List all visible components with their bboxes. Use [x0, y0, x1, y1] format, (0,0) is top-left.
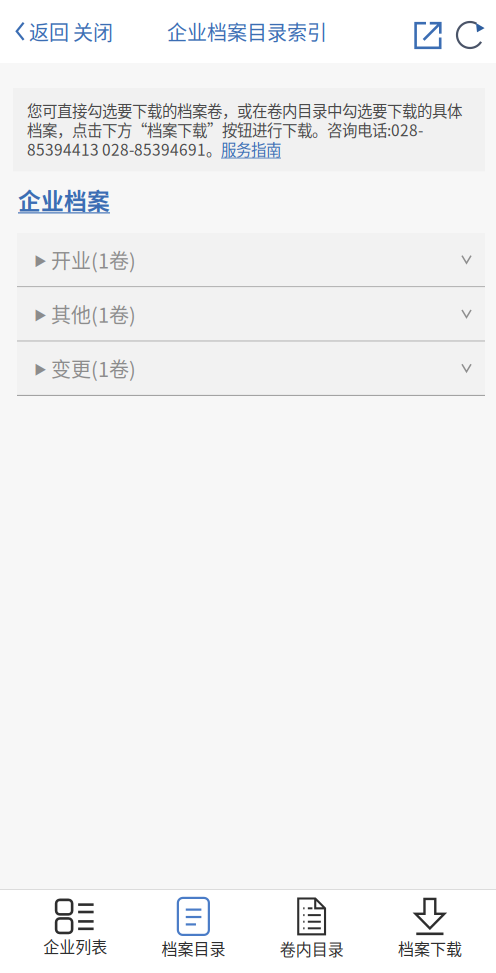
staticText: 档案下载	[398, 936, 462, 960]
button[interactable]: ▶	[17, 233, 485, 287]
staticText: 服务指南	[221, 138, 281, 160]
button[interactable]: Refresh	[442, 7, 496, 55]
staticText: 85394413 028-85394691。	[27, 138, 221, 160]
staticText: ▶	[34, 305, 47, 323]
button[interactable]: Open in browser	[404, 7, 442, 55]
button[interactable]: 档案目录	[134, 890, 252, 973]
button[interactable]: 卷内目录	[252, 890, 371, 973]
button[interactable]: 服务指南	[221, 138, 281, 160]
staticText: ▶	[34, 250, 47, 269]
button[interactable]: 返回 关闭	[0, 5, 123, 58]
staticText: 您可直接勾选要下载的档案卷，或在卷内目录中勾选要下载的具体	[27, 99, 462, 121]
button[interactable]: 企业列表	[16, 892, 134, 971]
button[interactable]: ▶	[17, 342, 485, 396]
staticText: 档案目录	[161, 936, 225, 960]
staticText: ▶	[34, 359, 47, 377]
staticText: 开业(1卷)	[47, 245, 136, 274]
button[interactable]: 企业档案	[0, 171, 110, 233]
staticText: 变更(1卷)	[47, 354, 136, 383]
button[interactable]: 档案下载	[371, 890, 489, 973]
staticText: 企业列表	[43, 934, 107, 958]
staticText: 返回 关闭	[29, 17, 113, 46]
staticText: 档案，点击下方“档案下载”按钮进行下载。咨询电话:028-	[27, 118, 423, 141]
staticText: 企业档案目录索引	[167, 17, 327, 46]
staticText: 企业档案	[18, 183, 110, 216]
staticText: 其他(1卷)	[47, 299, 136, 328]
staticText: 卷内目录	[280, 937, 344, 960]
button[interactable]: ▶	[17, 287, 485, 342]
